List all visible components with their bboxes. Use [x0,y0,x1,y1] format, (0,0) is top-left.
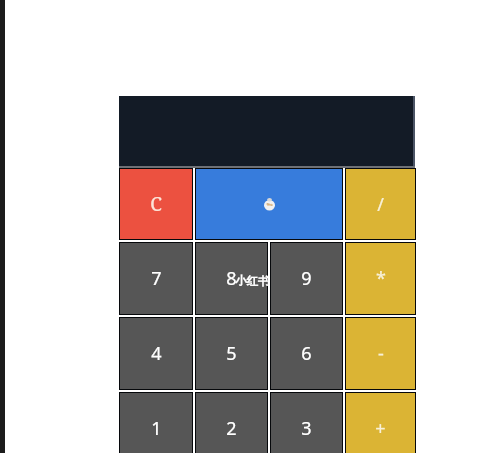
button[interactable]: 1 [119,392,193,453]
staticText: / [377,192,384,217]
staticText: 8 [226,266,237,291]
button[interactable]: / [345,168,416,240]
button[interactable]: Calculator display [119,96,415,166]
staticText: 9 [301,266,312,291]
staticText: 3 [301,416,312,441]
button[interactable]: 5 [195,317,268,390]
staticText: 5 [226,341,237,366]
button[interactable]: 7 [119,242,193,315]
button[interactable]: App logo [195,168,343,240]
button[interactable]: C [119,168,193,240]
button[interactable]: 4 [119,317,193,390]
staticText: C [150,191,162,217]
staticText: 4 [151,341,162,366]
staticText: * [376,266,386,291]
button[interactable]: 6 [270,317,343,390]
button[interactable]: - [345,317,416,390]
staticText: 7 [151,266,162,291]
button[interactable]: 2 [195,392,268,453]
button[interactable]: 9 [270,242,343,315]
staticText: + [375,416,386,441]
button[interactable]: * [345,242,416,315]
button[interactable]: 3 [270,392,343,453]
staticText: 2 [226,416,237,441]
button[interactable]: 8 [195,242,268,315]
staticText: 小红书 [235,274,270,288]
staticText: 6 [301,341,312,366]
staticText: 1 [151,416,162,441]
button[interactable]: + [345,392,416,453]
staticText: - [378,341,384,366]
